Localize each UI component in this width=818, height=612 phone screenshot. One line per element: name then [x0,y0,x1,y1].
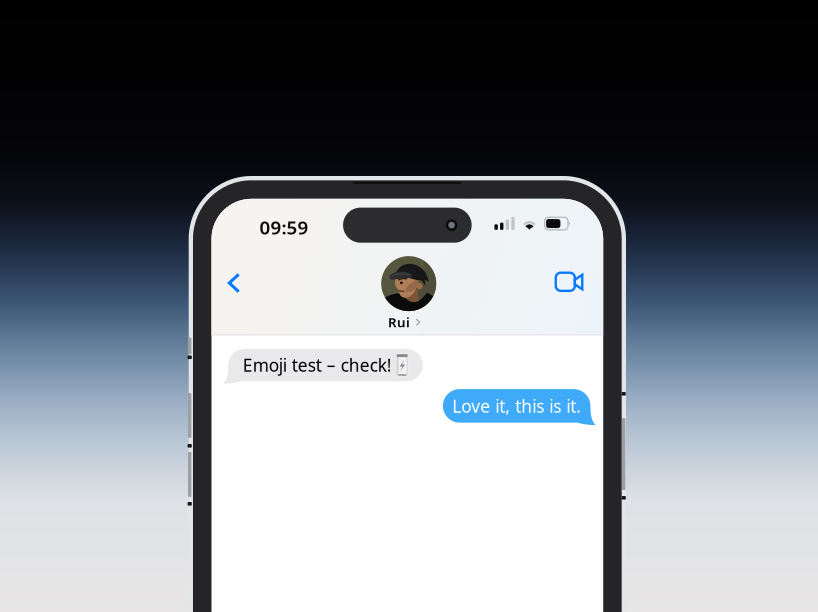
button[interactable]: Rui [367,256,451,329]
button[interactable]: Back [212,261,256,305]
button[interactable]: FaceTime [547,260,591,304]
staticText: Love it, this is it. [452,394,581,417]
staticText: 09:59 [259,215,308,240]
staticText: Rui [388,313,410,331]
staticText: Emoji test – check! [243,354,392,377]
